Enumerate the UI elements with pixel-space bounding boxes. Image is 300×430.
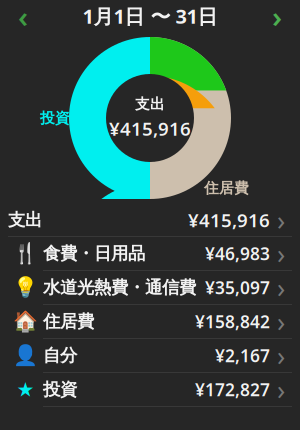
staticText: 👤 xyxy=(13,344,38,367)
staticText: ¥172,827 xyxy=(195,378,270,401)
button[interactable]: 🍴 xyxy=(0,237,300,271)
staticText: ¥2,167 xyxy=(215,344,270,367)
staticText: › xyxy=(277,270,285,305)
staticText: 支出 xyxy=(135,95,165,113)
staticText: 水道光熱費・通信費 xyxy=(43,277,196,298)
staticText: ★ xyxy=(16,378,34,401)
staticText: 食費・日用品 xyxy=(43,243,145,264)
staticText: 支出 xyxy=(8,209,42,231)
staticText: 1月1日 〜 31日 xyxy=(82,3,217,29)
staticText: ¥415,916 xyxy=(109,116,191,141)
staticText: › xyxy=(277,338,285,373)
staticText: 住居費 xyxy=(43,311,94,332)
staticText: › xyxy=(272,0,282,35)
staticText: 💡 xyxy=(13,276,38,299)
staticText: › xyxy=(277,372,285,407)
button[interactable]: 🏠 xyxy=(0,305,300,339)
staticText: 自分 xyxy=(43,345,77,366)
staticText: › xyxy=(277,304,285,339)
staticText: › xyxy=(277,236,285,271)
button[interactable]: 💡 xyxy=(0,271,300,305)
staticText: ‹ xyxy=(18,0,28,35)
button[interactable]: Next month xyxy=(254,0,300,32)
staticText: ¥158,842 xyxy=(195,310,270,333)
button[interactable]: ★ xyxy=(0,373,300,407)
staticText: 投資 xyxy=(43,379,77,400)
staticText: ¥35,097 xyxy=(205,276,270,299)
button[interactable]: 👤 xyxy=(0,339,300,373)
staticText: ¥46,983 xyxy=(205,242,270,265)
staticText: ¥415,916 xyxy=(188,208,270,232)
staticText: 🏠 xyxy=(13,310,38,333)
button[interactable]: 支出 xyxy=(0,204,300,237)
button[interactable]: Previous month xyxy=(0,0,46,32)
staticText: › xyxy=(277,202,285,238)
staticText: 住居費 xyxy=(204,179,249,197)
staticText: 投資 xyxy=(40,109,70,127)
staticText: 🍴 xyxy=(13,242,38,265)
